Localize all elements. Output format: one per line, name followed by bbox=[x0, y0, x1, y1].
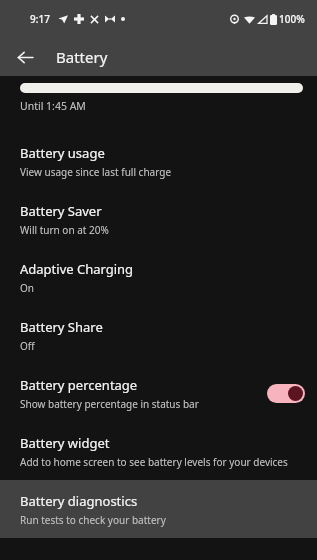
button[interactable]: Back bbox=[8, 40, 42, 74]
staticText: Battery diagnostics bbox=[20, 492, 138, 510]
staticText: Battery percentage bbox=[20, 376, 138, 394]
staticText: Battery usage bbox=[20, 144, 105, 162]
button[interactable]: Battery Saver bbox=[0, 190, 317, 248]
button[interactable]: Battery widget bbox=[0, 422, 317, 480]
button[interactable]: Battery Share bbox=[0, 306, 317, 364]
button[interactable]: Battery percentage toggle bbox=[267, 384, 305, 403]
staticText: Battery bbox=[56, 47, 108, 67]
staticText: Battery Saver bbox=[20, 202, 102, 220]
staticText: Will turn on at 20% bbox=[20, 223, 109, 237]
button[interactable]: Battery diagnostics bbox=[0, 480, 317, 538]
staticText: Add to home screen to see battery levels… bbox=[20, 455, 288, 469]
staticText: 9:17 bbox=[30, 12, 50, 26]
staticText: Off bbox=[20, 339, 35, 353]
staticText: Battery widget bbox=[20, 434, 110, 452]
staticText: View usage since last full charge bbox=[20, 165, 172, 179]
staticText: 100% bbox=[279, 12, 305, 26]
button[interactable]: Battery usage bbox=[0, 132, 317, 190]
button[interactable]: Adaptive Charging bbox=[0, 248, 317, 306]
button[interactable]: Battery percentage bbox=[0, 364, 317, 422]
staticText: Adaptive Charging bbox=[20, 260, 134, 278]
staticText: Battery Share bbox=[20, 318, 103, 336]
staticText: On bbox=[20, 281, 34, 295]
staticText: Until 1:45 AM bbox=[20, 99, 86, 113]
staticText: Run tests to check your battery bbox=[20, 513, 166, 527]
staticText: Show battery percentage in status bar bbox=[20, 397, 199, 411]
